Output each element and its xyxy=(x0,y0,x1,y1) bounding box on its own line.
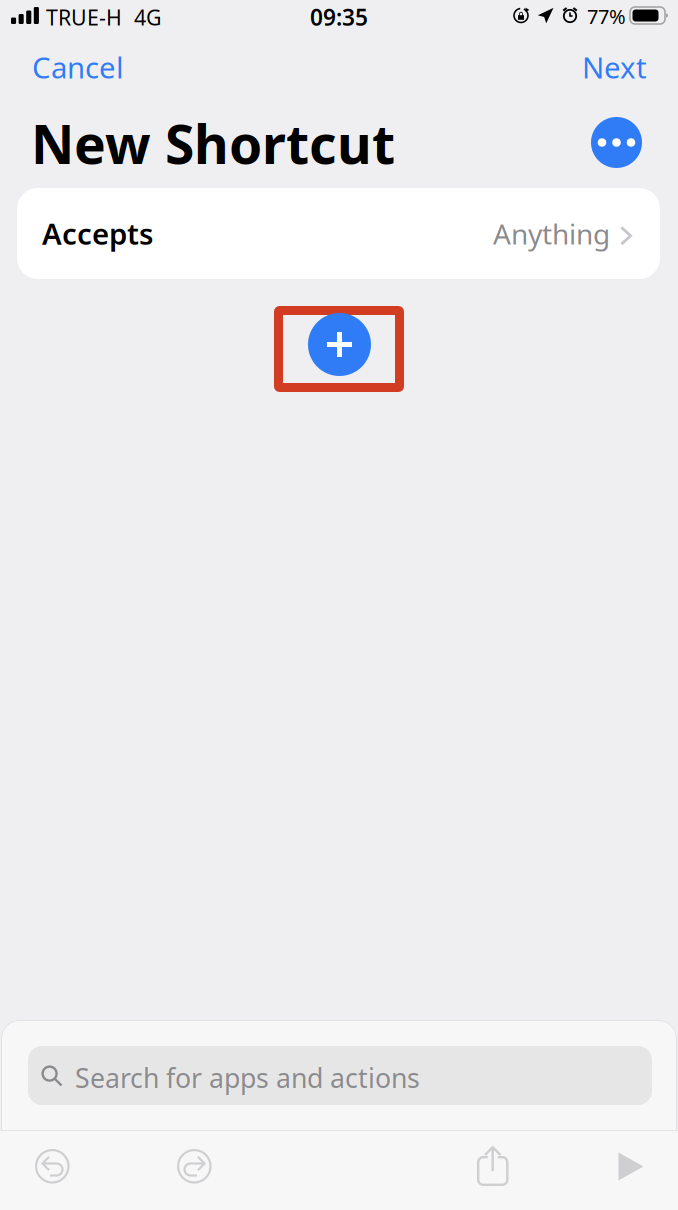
staticText: Search for apps and actions xyxy=(75,1060,420,1095)
staticText: New Shortcut xyxy=(31,108,395,179)
staticText: 4G xyxy=(134,3,162,31)
staticText: TRUE-H xyxy=(46,3,122,31)
staticText: 77% xyxy=(587,3,626,30)
button[interactable]: Run shortcut xyxy=(607,1142,654,1191)
button[interactable]: Accepts xyxy=(17,188,660,279)
staticText: Accepts xyxy=(42,214,153,253)
button[interactable]: Cancel xyxy=(0,36,142,97)
button[interactable]: Search for apps and actions xyxy=(28,1046,652,1105)
button[interactable]: Redo xyxy=(169,1141,220,1192)
button[interactable]: Undo xyxy=(27,1141,78,1192)
button[interactable]: Add action xyxy=(308,313,371,376)
staticText: 09:35 xyxy=(310,2,368,32)
staticText: Anything xyxy=(493,215,610,252)
staticText: Cancel xyxy=(32,47,124,86)
button[interactable]: More options xyxy=(591,117,642,168)
button[interactable]: Next xyxy=(564,36,678,97)
button[interactable]: Share xyxy=(468,1137,517,1195)
staticText: Next xyxy=(582,47,647,86)
